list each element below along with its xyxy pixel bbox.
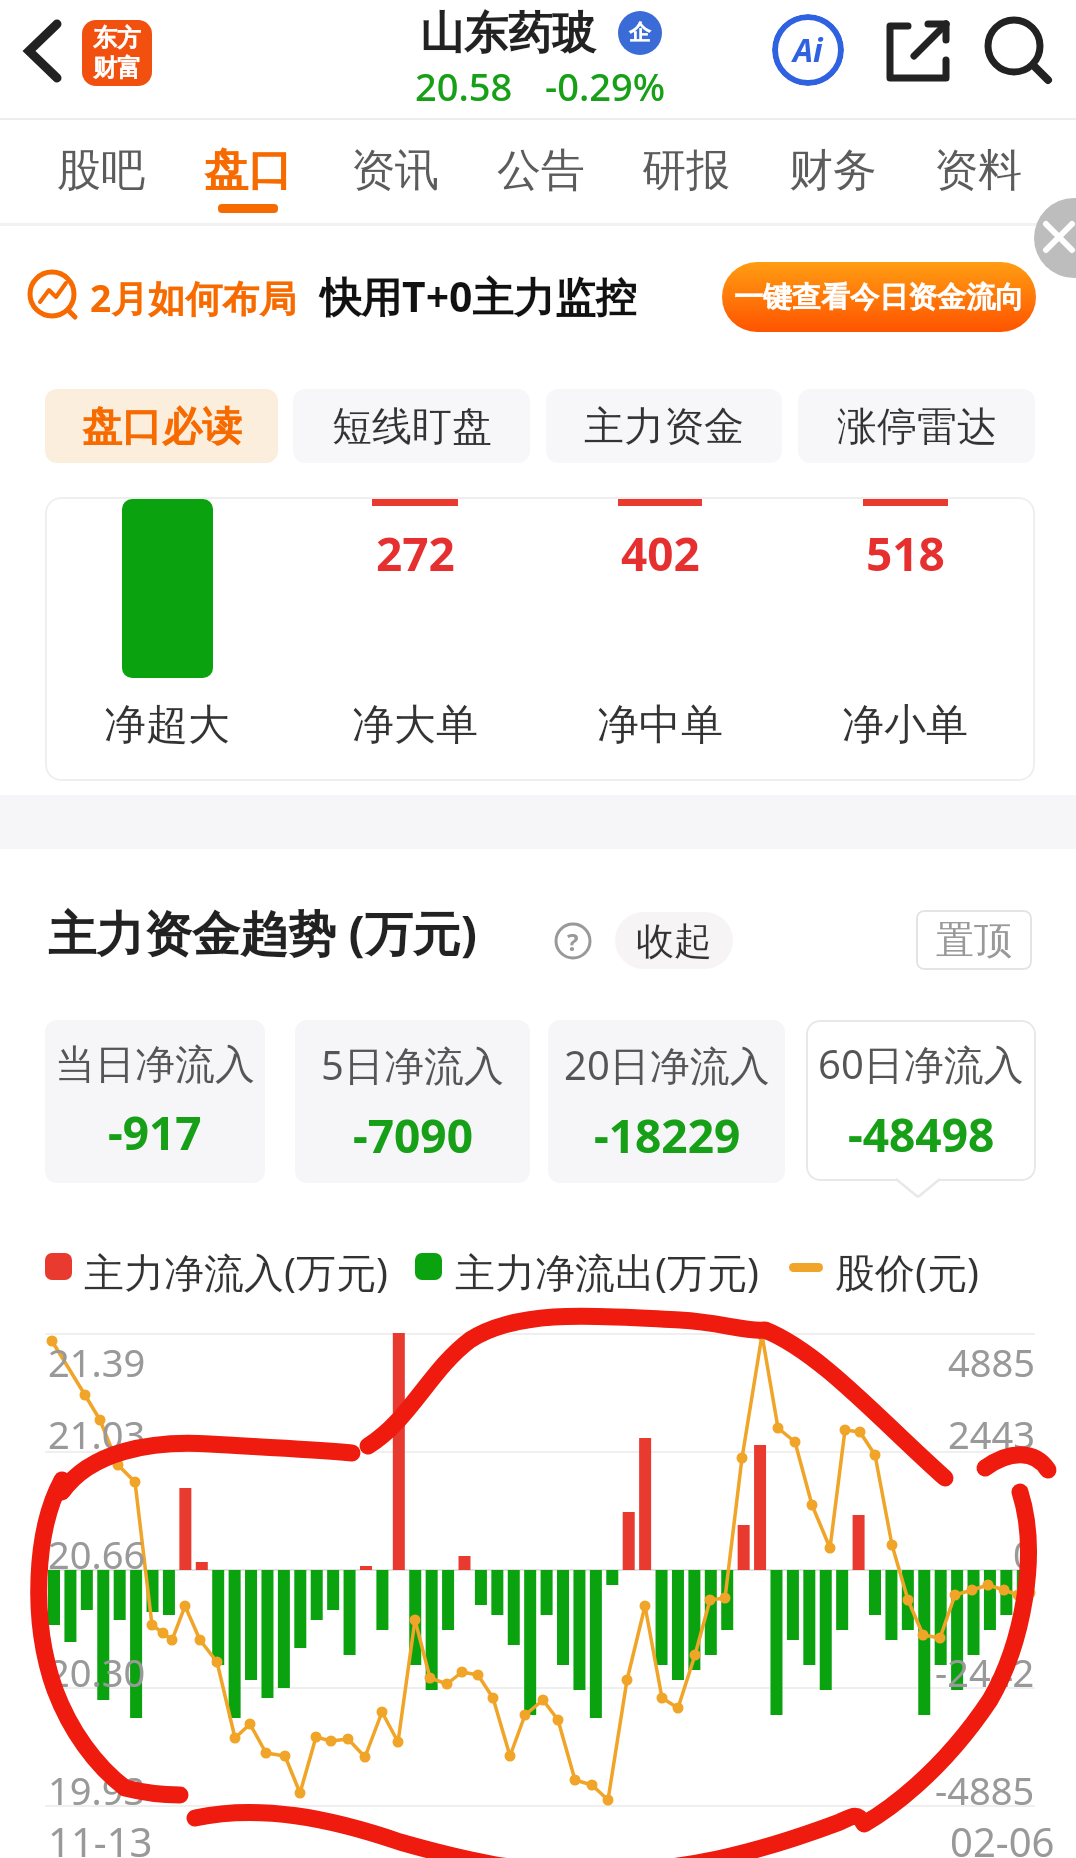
staticText: -7090 [353, 1104, 473, 1167]
button[interactable] [0, 0, 120, 118]
staticText: 股吧 [57, 143, 145, 198]
staticText: 402 [621, 522, 700, 585]
button[interactable]: 东方 [82, 20, 152, 86]
button[interactable]: 20日净流入 [548, 1020, 785, 1183]
staticText: 当日净流入 [55, 1039, 255, 1089]
staticText: -18229 [594, 1104, 741, 1167]
staticText: 02-06 [950, 1814, 1055, 1858]
staticText: 21.39 [48, 1336, 146, 1388]
button[interactable]: 短线盯盘 [293, 389, 530, 463]
staticText: 净小单 [842, 699, 968, 752]
staticText: 涨停雷达 [837, 401, 997, 451]
button[interactable]: 主力资金 [546, 389, 782, 463]
staticText: 21.03 [48, 1408, 146, 1460]
staticText: 财务 [789, 143, 877, 198]
staticText: 主力净流出(万元) [455, 1244, 759, 1299]
staticText: 股价(元) [835, 1244, 979, 1299]
staticText: 60日净流入 [818, 1036, 1024, 1091]
button[interactable]: 资料 [918, 135, 1038, 205]
staticText: 山东药玻 [420, 6, 596, 61]
staticText: 20.58 [415, 60, 513, 112]
button[interactable]: 盘口 [188, 135, 308, 205]
staticText: -48498 [848, 1103, 995, 1166]
button[interactable]: 资讯 [335, 135, 455, 205]
staticText: 0 [1013, 1528, 1035, 1576]
staticText: 盘口 [204, 143, 292, 198]
staticText: 置顶 [936, 916, 1012, 964]
button[interactable] [1016, 206, 1076, 270]
staticText: 11-13 [48, 1814, 153, 1858]
button[interactable]: 当日净流入 [45, 1020, 265, 1183]
staticText: -2442 [935, 1646, 1035, 1694]
staticText: -917 [108, 1101, 202, 1164]
staticText: 公告 [497, 143, 585, 198]
button[interactable]: 财务 [773, 135, 893, 205]
button[interactable]: 公告 [481, 135, 601, 205]
staticText: 财富 [93, 53, 141, 83]
button[interactable]: 盘口必读 [45, 389, 278, 463]
staticText: 20.66 [48, 1528, 146, 1580]
staticText: ? [567, 925, 579, 958]
staticText: 净中单 [597, 699, 723, 752]
staticText: 20.30 [48, 1646, 146, 1698]
staticText: 272 [376, 522, 455, 585]
staticText: -4885 [935, 1764, 1035, 1812]
staticText: Ai [793, 28, 823, 72]
staticText: 收起 [636, 917, 712, 965]
button[interactable] [880, 16, 956, 88]
staticText: 5日净流入 [321, 1037, 504, 1092]
staticText: 企 [629, 19, 651, 47]
button[interactable]: 涨停雷达 [798, 389, 1035, 463]
staticText: 短线盯盘 [332, 401, 492, 451]
button[interactable]: 股吧 [41, 135, 161, 205]
button[interactable]: 60日净流入 [806, 1020, 1036, 1181]
staticText: 2月如何布局 [90, 272, 297, 323]
button[interactable]: 一键查看今日资金流向 [722, 262, 1036, 332]
staticText: 资讯 [351, 143, 439, 198]
staticText: 19.93 [48, 1764, 146, 1816]
button[interactable]: Ai [772, 14, 844, 86]
staticText: 4885 [948, 1336, 1035, 1384]
staticText: 518 [866, 522, 945, 585]
button[interactable] [984, 16, 1056, 88]
staticText: 快用T+0主力监控 [320, 268, 637, 324]
staticText: 盘口必读 [82, 401, 242, 451]
button[interactable]: 研报 [626, 135, 746, 205]
staticText: -0.29% [545, 60, 666, 112]
button[interactable]: 收起 [615, 912, 733, 969]
staticText: 净大单 [352, 699, 478, 752]
staticText: 20日净流入 [564, 1037, 770, 1092]
staticText: 研报 [642, 143, 730, 198]
button[interactable]: 置顶 [916, 910, 1032, 970]
staticText: 主力资金趋势 (万元) [48, 900, 478, 966]
staticText: 主力资金 [584, 401, 744, 451]
staticText: 一键查看今日资金流向 [734, 279, 1024, 316]
staticText: 东方 [93, 23, 141, 53]
staticText: 2443 [948, 1408, 1035, 1456]
staticText: 主力净流入(万元) [84, 1244, 388, 1299]
staticText: 净超大 [104, 699, 230, 752]
button[interactable]: 5日净流入 [295, 1020, 530, 1183]
staticText: 资料 [934, 143, 1022, 198]
